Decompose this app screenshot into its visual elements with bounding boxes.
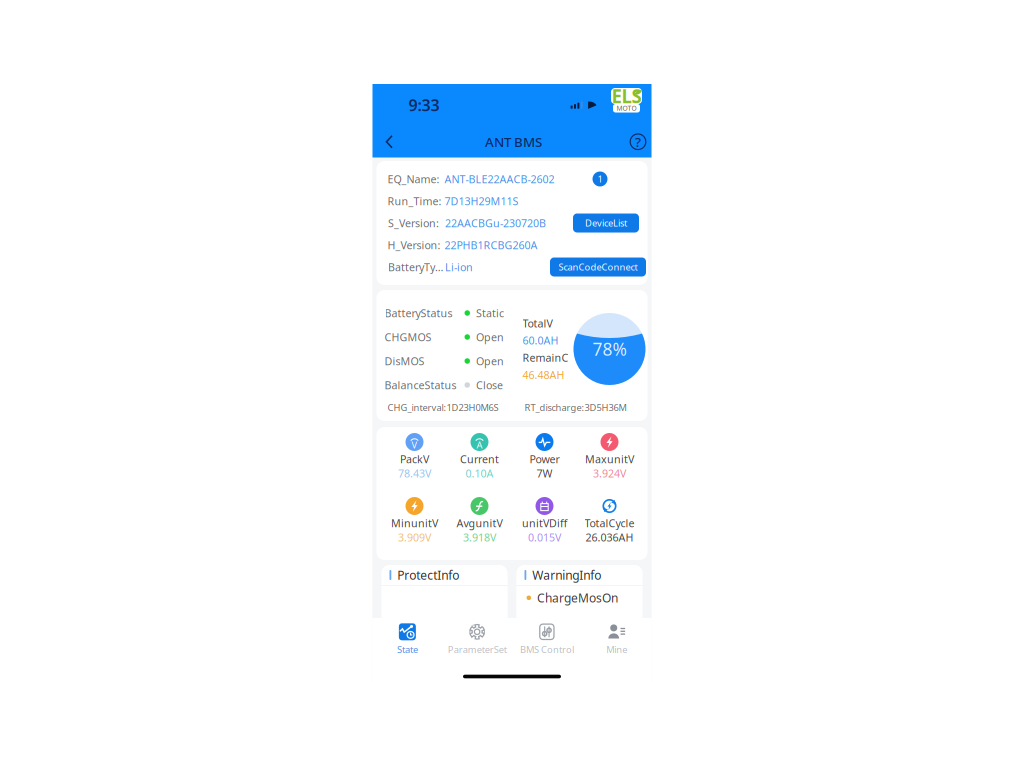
staticText: 78.43V (398, 466, 431, 480)
staticText: Run_Time: (387, 194, 441, 208)
staticText: MinunitV (391, 516, 438, 530)
staticText: 26.036AH (585, 530, 633, 544)
staticText: 22PHB1RCBG260A (444, 238, 537, 252)
staticText: unitVDiff (522, 516, 567, 530)
button[interactable]: DeviceList (573, 213, 639, 232)
staticText: Close (476, 378, 503, 392)
button[interactable]: ScanCodeConnect (550, 257, 646, 276)
staticText: ANT-BLE22AACB-2602 (444, 172, 554, 186)
staticText: 3.909V (398, 530, 431, 544)
staticText: Open (476, 330, 504, 344)
staticText: H_Version: (387, 238, 440, 252)
staticText: V (411, 439, 417, 451)
staticText: ScanCodeConnect (558, 261, 637, 273)
staticText: TotalV (522, 316, 552, 330)
staticText: Mine (606, 643, 627, 656)
staticText: ANT BMS (485, 133, 542, 151)
staticText: 46.48AH (522, 368, 564, 382)
staticText: 9:33 (408, 94, 439, 116)
button[interactable]: BMS Control (512, 618, 582, 660)
staticText: ? (635, 133, 641, 151)
button[interactable]: Help (624, 126, 647, 157)
staticText: State (397, 643, 418, 656)
staticText: 78% (592, 337, 626, 360)
staticText: 3.918V (463, 530, 496, 544)
staticText: RemainC (522, 350, 568, 365)
staticText: 60.0AH (522, 333, 558, 347)
staticText: DeviceList (585, 217, 627, 229)
button[interactable]: State (372, 618, 442, 660)
staticText: Static (476, 306, 504, 320)
staticText: EQ_Name: (387, 172, 439, 186)
staticText: CHG_interval:1D23H0M6S (387, 401, 498, 414)
staticText: WarningInfo (532, 567, 601, 583)
staticText: BatteryStatus (384, 306, 452, 320)
staticText: A (476, 439, 482, 451)
staticText: RT_discharge:3D5H36M (524, 401, 626, 414)
staticText: 7D13H29M11S (444, 194, 518, 208)
staticText: MaxunitV (585, 452, 634, 466)
staticText: TotalCycle (584, 516, 634, 530)
staticText: 22AACBGu-230720B (445, 216, 546, 230)
staticText: AvgunitV (456, 516, 502, 530)
staticText: BatteryType: (388, 260, 445, 274)
staticText: 1 (597, 173, 602, 185)
staticText: 0.015V (528, 530, 561, 544)
button[interactable]: Back (376, 126, 402, 157)
staticText: 3.924V (593, 466, 626, 480)
staticText: 0.10A (465, 466, 493, 480)
staticText: BMS Control (520, 643, 574, 656)
staticText: DisMOS (384, 354, 424, 368)
staticText: Li-ion (445, 260, 473, 274)
staticText: PackV (400, 452, 429, 466)
button[interactable]: Mine (582, 618, 652, 660)
staticText: ChargeMosOn (537, 590, 618, 606)
staticText: ELS (611, 84, 641, 108)
staticText: S_Version: (388, 216, 439, 230)
button[interactable]: ParameterSet (442, 618, 512, 660)
staticText: BalanceStatus (384, 378, 456, 392)
staticText: ParameterSet (448, 643, 507, 656)
staticText: Power (529, 452, 559, 466)
staticText: ProtectInfo (397, 567, 459, 583)
staticText: 7W (536, 466, 552, 480)
staticText: Open (476, 354, 504, 368)
staticText: MOTO (616, 104, 636, 113)
staticText: CHGMOS (384, 330, 431, 344)
staticText: Current (460, 452, 499, 466)
